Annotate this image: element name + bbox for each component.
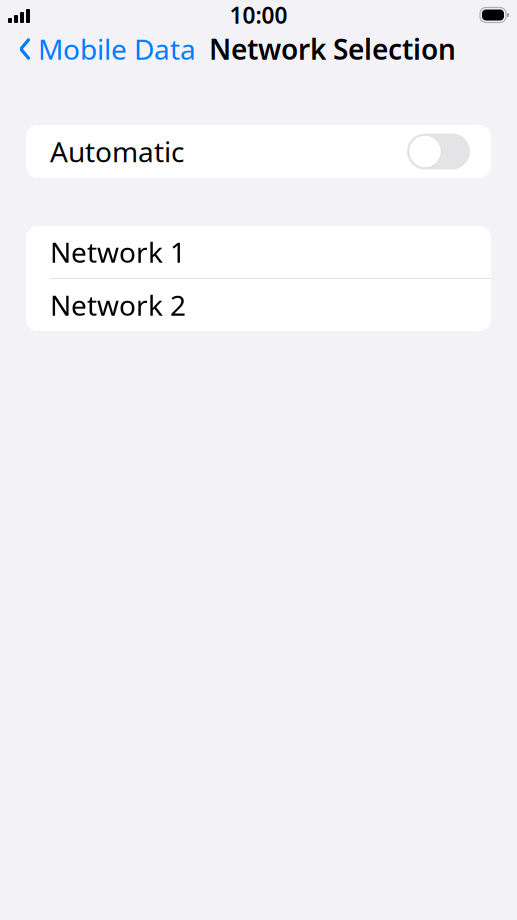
button[interactable]: Network 1 <box>26 226 491 278</box>
staticText: Automatic <box>50 133 184 170</box>
staticText: Network 2 <box>50 286 186 324</box>
button[interactable]: Mobile Data <box>0 24 196 74</box>
button[interactable]: Network 2 <box>26 279 491 331</box>
staticText: Mobile Data <box>38 30 196 68</box>
staticText: Network Selection <box>209 30 456 68</box>
button[interactable]: Automatic <box>26 125 491 178</box>
staticText: Network 1 <box>50 233 186 271</box>
staticText: 10:00 <box>229 0 287 30</box>
